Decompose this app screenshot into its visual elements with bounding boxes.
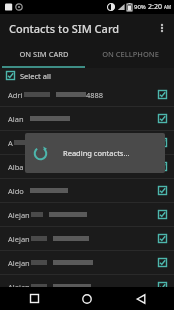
staticText: Contacts to SIM Card (9, 21, 120, 36)
button[interactable]: Select all (0, 68, 174, 83)
button[interactable]: A (0, 131, 174, 154)
staticText: AM (164, 4, 171, 10)
staticText: Alejan (8, 210, 30, 220)
staticText: Alba (8, 162, 24, 172)
staticText: ON CELLPHONE (102, 49, 159, 59)
staticText: Adri (8, 90, 23, 100)
staticText: 90% (134, 3, 146, 11)
button[interactable]: Alba (0, 155, 174, 178)
staticText: 4888 (86, 90, 104, 100)
button[interactable]: More options (150, 16, 174, 40)
staticText: ON SIM CARD (19, 49, 69, 59)
staticText: Alejan (8, 282, 30, 292)
button[interactable]: Reading contacts... (25, 133, 165, 173)
staticText: Alejan (8, 234, 30, 244)
button[interactable]: Alejan (0, 227, 174, 250)
staticText: Alejan (8, 258, 30, 268)
button[interactable]: Back (121, 287, 161, 310)
staticText: Select all (20, 71, 51, 81)
button[interactable]: ON CELLPHONE (87, 42, 174, 66)
button[interactable]: ON SIM CARD (0, 42, 87, 66)
staticText: Aldo (8, 186, 24, 196)
button[interactable]: Alejan (0, 251, 174, 274)
staticText: Alan (8, 114, 24, 124)
staticText: Reading contacts... (63, 148, 130, 158)
button[interactable]: Adri (0, 83, 174, 106)
button[interactable]: Recent apps (14, 287, 54, 310)
staticText: A (8, 138, 13, 148)
button[interactable]: Alejan (0, 275, 174, 298)
button[interactable]: Home (67, 287, 107, 310)
button[interactable]: Aldo (0, 179, 174, 202)
button[interactable]: Alan (0, 107, 174, 130)
staticText: 2:20 (148, 2, 162, 12)
button[interactable]: Alejan (0, 203, 174, 226)
